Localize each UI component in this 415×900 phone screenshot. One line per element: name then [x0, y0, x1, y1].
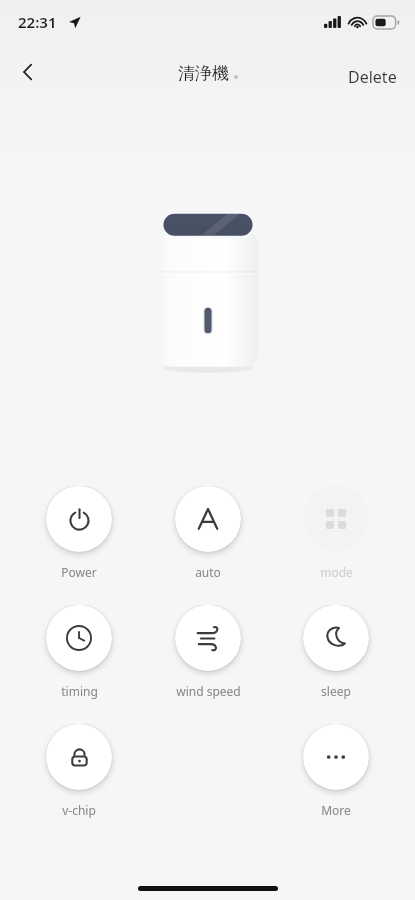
staticText: mode [320, 564, 353, 580]
staticText: 清浄機 [178, 63, 229, 84]
staticText: v-chip [62, 802, 96, 818]
button[interactable]: Delete [342, 60, 403, 94]
button[interactable]: sleep [286, 605, 386, 699]
staticText: wind speed [176, 683, 241, 699]
staticText: 22:31 [18, 12, 57, 32]
staticText: More [321, 802, 351, 818]
staticText: Delete [348, 66, 397, 88]
staticText: timing [61, 683, 98, 699]
staticText: sleep [321, 683, 351, 699]
button[interactable]: Power [29, 486, 129, 580]
staticText: Power [61, 564, 97, 580]
staticText: auto [195, 564, 221, 580]
button[interactable]: Back [6, 50, 50, 94]
button[interactable]: auto [158, 486, 258, 580]
button[interactable]: timing [29, 605, 129, 699]
button[interactable]: v-chip [29, 724, 129, 818]
button[interactable]: mode [286, 486, 386, 580]
button[interactable]: More [286, 724, 386, 818]
button[interactable]: wind speed [158, 605, 258, 699]
